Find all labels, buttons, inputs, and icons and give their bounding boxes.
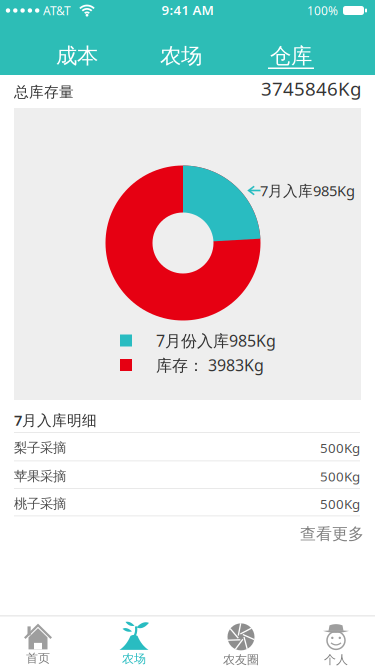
- button[interactable]: 成本: [37, 40, 117, 72]
- staticText: 3745846Kg: [261, 76, 361, 101]
- staticText: 农场: [160, 43, 202, 69]
- button[interactable]: 农场: [141, 40, 221, 72]
- staticText: 查看更多: [300, 524, 364, 544]
- staticText: 仓库: [270, 43, 312, 69]
- staticText: 桃子采摘: [14, 496, 66, 512]
- staticText: 7月入库明细: [14, 410, 97, 430]
- button[interactable]: 首页: [0, 624, 78, 666]
- staticText: 个人: [324, 652, 348, 667]
- staticText: 库存： 3983Kg: [156, 354, 264, 376]
- staticText: AT&T: [43, 2, 71, 18]
- button[interactable]: 苹果采摘: [14, 462, 360, 490]
- staticText: 7月入库985Kg: [260, 181, 355, 200]
- button[interactable]: 个人: [296, 624, 375, 666]
- staticText: 农友圈: [223, 652, 259, 667]
- staticText: 500Kg: [320, 439, 360, 457]
- staticText: 500Kg: [320, 495, 360, 513]
- staticText: 梨子采摘: [14, 440, 66, 456]
- staticText: 苹果采摘: [14, 468, 66, 484]
- staticText: 9:41 AM: [161, 1, 213, 19]
- staticText: 首页: [26, 651, 50, 666]
- button[interactable]: 农场: [94, 623, 174, 665]
- staticText: 7月份入库985Kg: [156, 330, 276, 351]
- button[interactable]: 桃子采摘: [14, 490, 360, 517]
- staticText: 500Kg: [320, 467, 360, 485]
- staticText: 总库存量: [14, 83, 74, 101]
- button[interactable]: 仓库: [251, 40, 331, 72]
- staticText: 农场: [122, 651, 146, 666]
- button[interactable]: 查看更多: [14, 520, 364, 548]
- staticText: 成本: [56, 43, 98, 69]
- button[interactable]: 农友圈: [201, 624, 281, 666]
- button[interactable]: 梨子采摘: [14, 434, 360, 461]
- staticText: 100%: [307, 2, 338, 18]
